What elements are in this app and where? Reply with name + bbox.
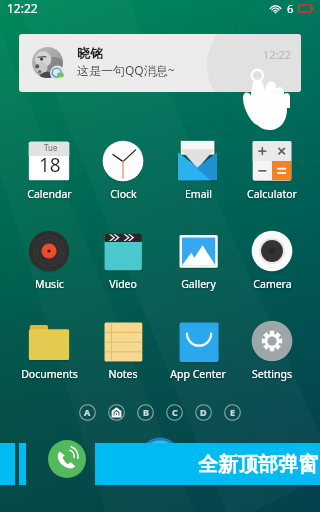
staticText: Camera bbox=[253, 277, 292, 291]
staticText: Clock bbox=[110, 187, 137, 201]
staticText: 6 bbox=[287, 1, 294, 16]
staticText: Notes bbox=[108, 367, 138, 381]
staticText: Calculator bbox=[247, 187, 297, 201]
staticText: App Center bbox=[170, 367, 226, 381]
staticText: Settings bbox=[252, 367, 292, 381]
staticText: 12:22 bbox=[7, 0, 38, 16]
button[interactable]: 全新顶部弹窗 bbox=[95, 443, 320, 485]
button[interactable]: Settings bbox=[236, 320, 308, 381]
button[interactable]: D bbox=[189, 403, 218, 421]
button[interactable]: Gallery bbox=[162, 230, 234, 291]
button[interactable]: C bbox=[160, 403, 189, 421]
button[interactable]: Notes bbox=[87, 320, 159, 381]
button[interactable]: A bbox=[73, 403, 102, 421]
staticText: C bbox=[172, 406, 178, 418]
button[interactable]: Phone bbox=[48, 440, 86, 478]
button[interactable]: B bbox=[131, 403, 160, 421]
button[interactable]: Camera bbox=[236, 230, 308, 291]
button[interactable]: Video bbox=[87, 230, 159, 291]
button[interactable]: Tue bbox=[13, 140, 85, 201]
button[interactable]: 晓铭 bbox=[19, 34, 301, 92]
button[interactable]: Documents bbox=[13, 320, 85, 381]
button[interactable]: E bbox=[218, 403, 247, 421]
button[interactable]: Music bbox=[13, 230, 85, 291]
button[interactable]: Clock bbox=[87, 140, 159, 201]
staticText: 全新顶部弹窗 bbox=[198, 452, 318, 477]
staticText: Tue bbox=[44, 142, 58, 153]
button[interactable]: Email bbox=[162, 140, 234, 201]
staticText: 12:22 bbox=[263, 47, 292, 62]
staticText: E bbox=[230, 406, 236, 418]
staticText: Documents bbox=[21, 367, 78, 381]
staticText: Gallery bbox=[181, 277, 216, 291]
staticText: 晓铭 bbox=[77, 45, 103, 61]
staticText: Email bbox=[185, 187, 212, 201]
staticText: D bbox=[200, 406, 207, 418]
button[interactable]: App Center bbox=[162, 320, 234, 381]
staticText: 18 bbox=[39, 152, 61, 178]
staticText: Video bbox=[109, 277, 137, 291]
button[interactable] bbox=[102, 403, 131, 421]
staticText: 这是一句QQ消息~ bbox=[77, 62, 175, 78]
button[interactable]: Calculator bbox=[236, 140, 308, 201]
staticText: Music bbox=[35, 277, 64, 291]
staticText: B bbox=[143, 406, 149, 418]
staticText: Calendar bbox=[27, 187, 72, 201]
staticText: A bbox=[84, 406, 91, 418]
